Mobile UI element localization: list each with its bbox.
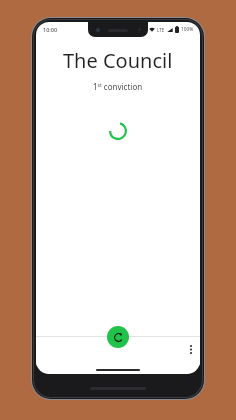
- staticText: LTE: [157, 27, 165, 33]
- staticText: The Council: [63, 47, 173, 74]
- staticText: 1st conviction: [93, 81, 143, 92]
- button[interactable]: More options: [182, 340, 200, 358]
- button[interactable]: Restart: [107, 326, 129, 348]
- staticText: 10:00: [43, 26, 58, 33]
- staticText: 100%: [181, 26, 194, 33]
